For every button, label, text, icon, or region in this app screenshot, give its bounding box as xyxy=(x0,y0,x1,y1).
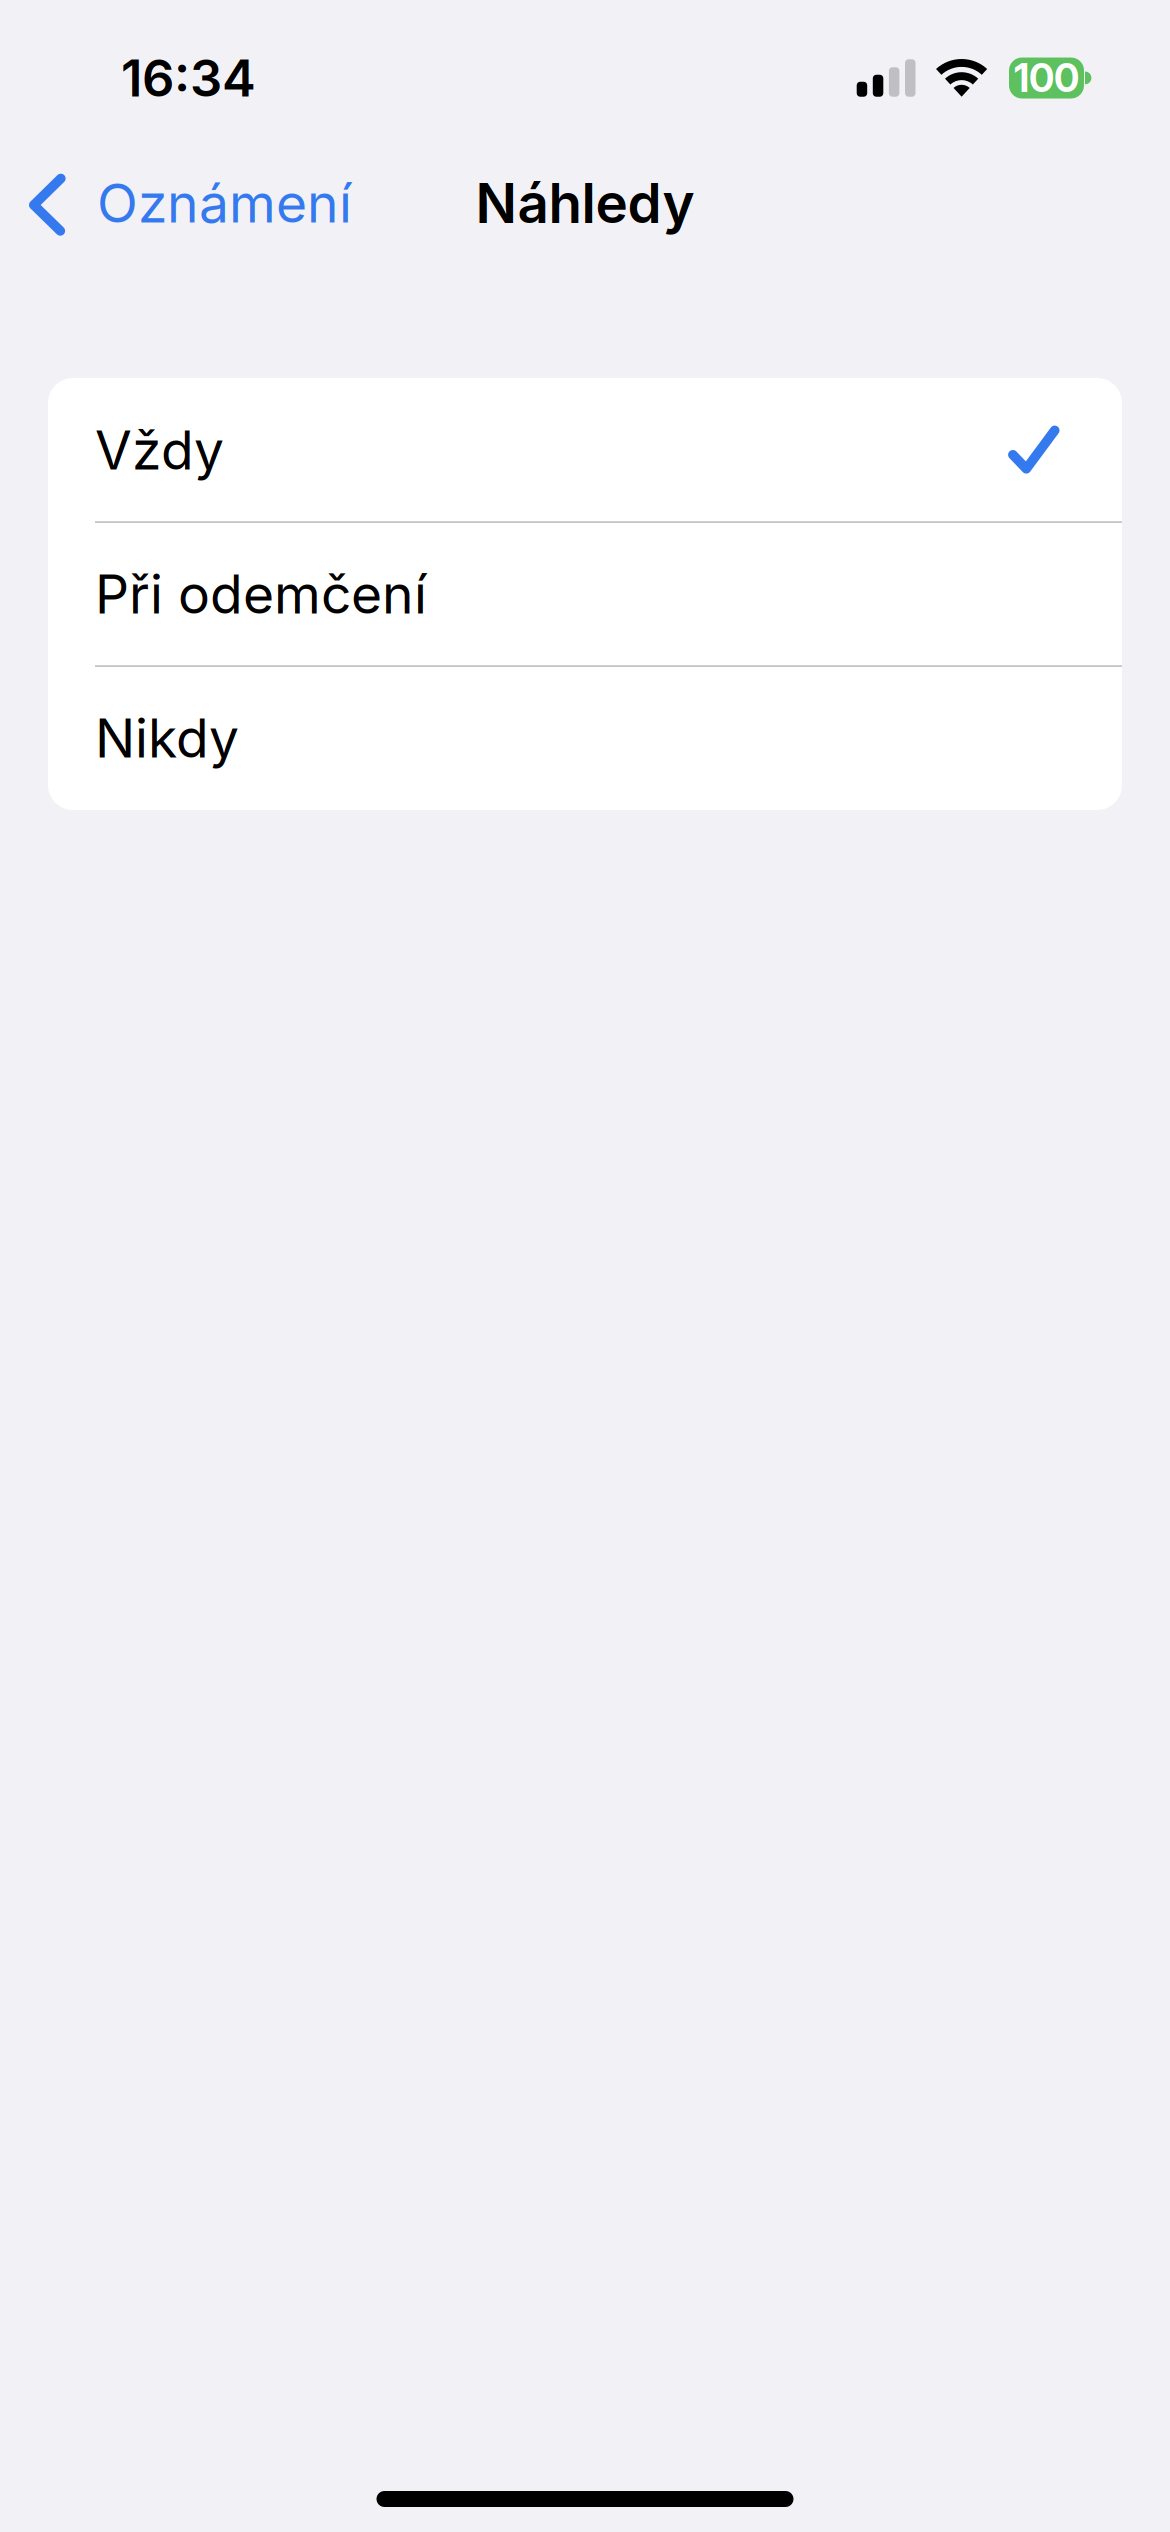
button[interactable]: Nikdy xyxy=(48,666,1122,810)
staticText: 16:34 xyxy=(121,47,256,109)
staticText: Náhledy xyxy=(475,170,694,236)
button[interactable]: Oznámení xyxy=(0,157,372,249)
button[interactable]: Vždy xyxy=(48,378,1122,522)
staticText: Oznámení xyxy=(97,171,352,235)
button[interactable]: Při odemčení xyxy=(48,522,1122,666)
staticText: Vždy xyxy=(95,418,224,482)
staticText: Nikdy xyxy=(95,706,239,770)
staticText: Při odemčení xyxy=(95,562,427,626)
staticText: 100 xyxy=(1014,55,1079,101)
